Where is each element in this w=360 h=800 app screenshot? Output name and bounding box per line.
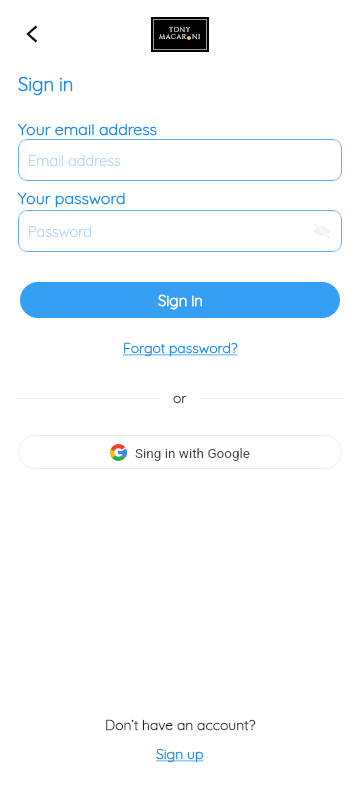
staticText: TONY xyxy=(169,26,191,35)
button[interactable]: Email address xyxy=(18,139,342,181)
staticText: Don’t have an account? xyxy=(105,716,256,734)
button[interactable]: Password xyxy=(18,210,342,252)
staticText: Email address xyxy=(28,151,121,169)
button[interactable]: Sign in xyxy=(20,282,340,318)
staticText: Sign in xyxy=(158,291,203,310)
staticText: Sign in xyxy=(18,72,74,95)
button[interactable]: Sign up xyxy=(156,745,204,763)
staticText: NI xyxy=(192,33,201,42)
staticText: Sing in with Google xyxy=(135,445,251,461)
button[interactable]: Sing in with Google xyxy=(18,435,342,469)
staticText: Your email address xyxy=(18,119,158,139)
staticText: MACAR xyxy=(159,33,187,42)
button[interactable]: Back xyxy=(11,13,53,55)
staticText: Password xyxy=(28,222,92,240)
button[interactable]: Forgot password? xyxy=(123,339,238,357)
staticText: or xyxy=(173,389,187,407)
staticText: Your password xyxy=(18,188,126,208)
